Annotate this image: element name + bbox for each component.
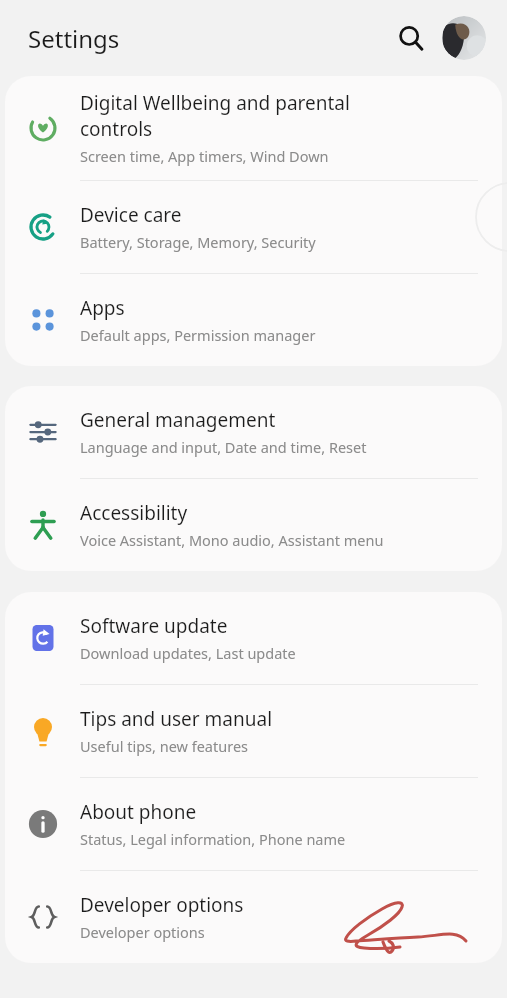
staticText: Digital Wellbeing and parental controls (80, 90, 350, 142)
staticText: General management (80, 407, 276, 433)
button[interactable]: General management (5, 386, 502, 478)
button[interactable]: Developer options (5, 871, 502, 963)
staticText: Status, Legal information, Phone name (80, 829, 346, 849)
staticText: Useful tips, new features (80, 736, 249, 756)
staticText: Developer options (80, 922, 205, 942)
staticText: Download updates, Last update (80, 643, 296, 663)
staticText: Language and input, Date and time, Reset (80, 437, 367, 457)
staticText: Voice Assistant, Mono audio, Assistant m… (80, 530, 384, 550)
button[interactable]: Apps (5, 274, 502, 366)
button[interactable]: Tips and user manual (5, 685, 502, 777)
staticText: Developer options (80, 892, 244, 918)
staticText: Tips and user manual (80, 706, 273, 732)
button[interactable]: Software update (5, 592, 502, 684)
staticText: Battery, Storage, Memory, Security (80, 232, 316, 252)
staticText: Settings (28, 22, 120, 55)
staticText: Device care (80, 202, 182, 228)
button[interactable]: Digital Wellbeing and parental controls (5, 76, 502, 180)
staticText: Apps (80, 295, 125, 321)
button[interactable]: Device care (5, 181, 502, 273)
button[interactable]: About phone (5, 778, 502, 870)
staticText: About phone (80, 799, 197, 825)
staticText: Screen time, App timers, Wind Down (80, 146, 329, 166)
button[interactable]: Accessibility (5, 479, 502, 571)
button[interactable]: Account (442, 16, 486, 60)
staticText: Software update (80, 613, 228, 639)
button[interactable]: Search (389, 16, 433, 60)
staticText: Accessibility (80, 500, 188, 526)
staticText: Default apps, Permission manager (80, 325, 316, 345)
